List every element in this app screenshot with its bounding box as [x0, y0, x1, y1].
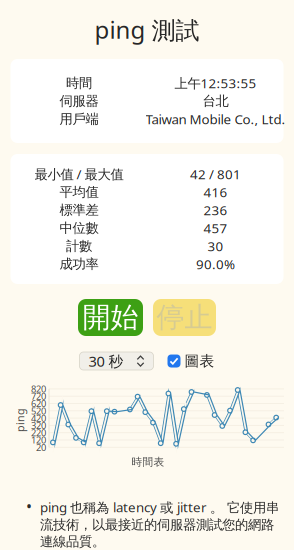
staticText: 42 / 801 — [190, 165, 241, 183]
button[interactable]: 停止 — [153, 299, 216, 336]
staticText: 120 — [31, 434, 46, 446]
staticText: 236 — [203, 201, 227, 219]
staticText: 320 — [31, 419, 46, 432]
staticText: 台北 — [202, 93, 228, 109]
staticText: 30 秒 — [88, 351, 123, 371]
staticText: 圖表 — [184, 352, 214, 370]
staticText: 時間 — [66, 75, 92, 91]
staticText: 標準差 — [59, 202, 98, 218]
staticText: ping 也稱為 latency 或 jitter 。 它使用串流技術，以最接近… — [40, 498, 279, 550]
staticText: • — [26, 495, 32, 517]
staticText: 457 — [203, 219, 227, 237]
button[interactable]: 30 秒 — [79, 352, 153, 370]
button[interactable]: 圖表 — [167, 352, 214, 370]
staticText: 平均值 — [59, 184, 98, 200]
staticText: 220 — [31, 426, 46, 439]
staticText: 上午12:53:55 — [174, 74, 256, 92]
staticText: 最小值 / 最大值 — [34, 165, 123, 183]
staticText: 720 — [31, 390, 46, 402]
staticText: 停止 — [156, 300, 212, 335]
staticText: Taiwan Mobile Co., Ltd. — [145, 110, 285, 128]
staticText: 計數 — [66, 238, 92, 254]
staticText: 中位數 — [59, 220, 98, 236]
staticText: 成功率 — [59, 256, 98, 272]
staticText: 時間表 — [131, 455, 164, 468]
staticText: 420 — [31, 412, 46, 424]
staticText: 416 — [203, 183, 227, 201]
staticText: 520 — [31, 405, 46, 417]
button[interactable]: 開始 — [78, 299, 143, 336]
staticText: 20 — [36, 441, 46, 453]
staticText: ping 測試 — [94, 13, 199, 45]
staticText: 620 — [31, 397, 46, 410]
staticText: 伺服器 — [59, 93, 98, 109]
staticText: 開始 — [82, 300, 138, 335]
staticText: ping — [8, 413, 32, 427]
staticText: 30 — [207, 237, 223, 255]
staticText: 820 — [31, 383, 46, 395]
staticText: 用戶端 — [59, 111, 98, 127]
staticText: 90.0% — [196, 255, 235, 273]
